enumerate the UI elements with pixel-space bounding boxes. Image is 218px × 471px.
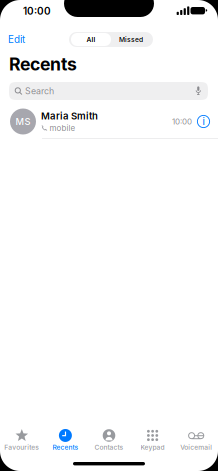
staticText: Keypad — [141, 443, 165, 451]
button[interactable]: Voicemail — [174, 425, 218, 455]
button[interactable]: Keypad — [131, 425, 174, 455]
staticText: Edit — [8, 33, 25, 45]
staticText: 10:00 — [23, 5, 51, 17]
staticText: mobile — [50, 123, 76, 133]
staticText: Recents — [52, 443, 78, 451]
button[interactable]: Edit — [8, 34, 44, 45]
button[interactable]: Missed — [111, 33, 151, 46]
staticText: Maria Smith — [41, 110, 98, 122]
staticText: MS — [15, 116, 30, 127]
staticText: Missed — [119, 35, 143, 44]
button[interactable]: Favourites — [0, 425, 44, 455]
staticText: Voicemail — [180, 443, 212, 451]
staticText: Recents — [9, 53, 77, 75]
staticText: Contacts — [94, 443, 123, 451]
button[interactable]: All — [71, 33, 111, 46]
button[interactable]: MS — [0, 105, 218, 138]
staticText: Search — [25, 86, 54, 96]
staticText: Favourites — [4, 443, 39, 451]
button[interactable]: Contacts — [87, 425, 131, 455]
staticText: 10:00 — [172, 117, 192, 126]
staticText: i — [202, 116, 204, 127]
button[interactable]: Recents — [44, 425, 87, 455]
staticText: All — [86, 35, 95, 44]
